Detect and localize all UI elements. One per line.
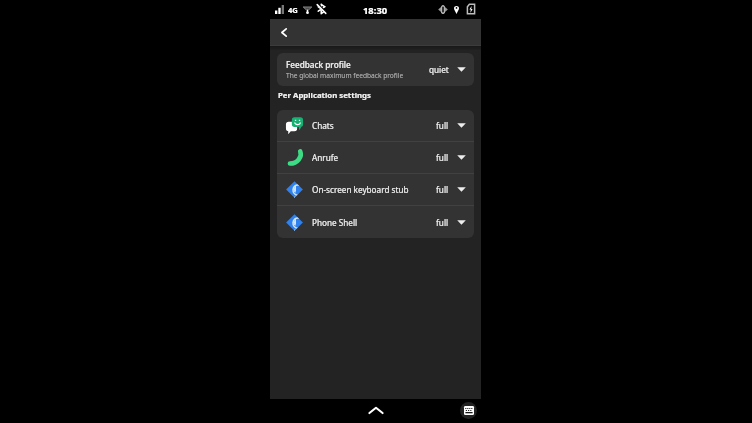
- staticText: full: [436, 152, 449, 163]
- staticText: Chats: [312, 120, 436, 131]
- button[interactable]: Phone Shell: [277, 206, 474, 238]
- staticText: Per Application settings: [278, 90, 371, 101]
- button[interactable]: On-screen keyboard stub: [277, 174, 474, 205]
- button[interactable]: Keyboard: [460, 402, 477, 419]
- button[interactable]: Chats: [277, 110, 474, 141]
- button[interactable]: Anrufe: [277, 142, 474, 173]
- button[interactable]: Back: [273, 22, 294, 43]
- staticText: 18:30: [363, 4, 388, 17]
- staticText: full: [436, 217, 449, 228]
- staticText: quiet: [429, 64, 449, 75]
- button[interactable]: Home: [366, 401, 385, 420]
- staticText: 4G: [288, 5, 298, 15]
- staticText: The global maximum feedback profile: [286, 71, 404, 80]
- staticText: full: [436, 120, 449, 131]
- staticText: full: [436, 184, 449, 195]
- staticText: Anrufe: [312, 152, 436, 163]
- staticText: Phone Shell: [312, 217, 436, 228]
- button[interactable]: Feedback profile: [277, 53, 474, 86]
- staticText: On-screen keyboard stub: [312, 184, 436, 195]
- staticText: Feedback profile: [286, 59, 351, 70]
